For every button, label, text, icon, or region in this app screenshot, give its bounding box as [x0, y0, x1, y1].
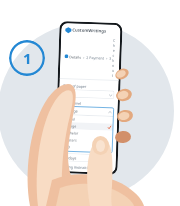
staticText: PhD [63, 144, 70, 149]
staticText: Essay [65, 91, 75, 96]
staticText: Payment [89, 55, 104, 60]
staticText: College [64, 123, 77, 129]
staticText: › 2 [83, 55, 88, 60]
button[interactable]: Masters [61, 136, 113, 145]
staticText: Details [69, 54, 81, 60]
staticText: Checkout [112, 38, 116, 78]
button[interactable]: 14 days [61, 153, 112, 163]
staticText: CustomWritings [72, 27, 106, 35]
staticText: › 3 [106, 56, 111, 61]
staticText: 14 days [63, 155, 77, 161]
button[interactable]: College [62, 122, 113, 131]
staticText: Masters [63, 137, 78, 143]
staticText: School [64, 116, 75, 122]
staticText: 1 [23, 48, 32, 68]
button[interactable]: College [62, 106, 114, 116]
button[interactable]: Bachelor [62, 129, 113, 138]
button[interactable]: Details [64, 36, 116, 78]
staticText: Type of paper [63, 83, 86, 89]
staticText: College [64, 108, 79, 114]
button[interactable]: School [62, 115, 113, 124]
staticText: Writing instructions [60, 164, 95, 170]
staticText: Study level [63, 100, 82, 106]
button[interactable]: Essay [63, 89, 114, 99]
button[interactable]: PhD [61, 143, 112, 152]
staticText: Bachelor [64, 130, 79, 136]
button[interactable]: CustomWritings [65, 27, 116, 35]
button[interactable]: Step 1 [9, 40, 45, 76]
